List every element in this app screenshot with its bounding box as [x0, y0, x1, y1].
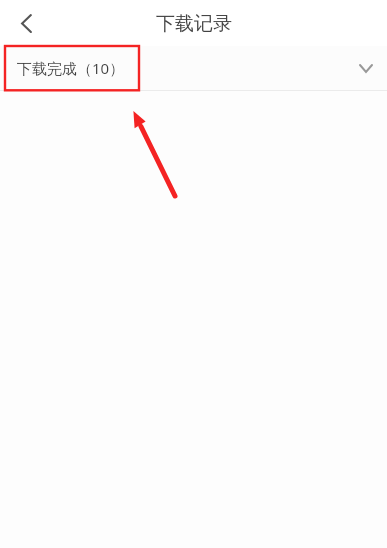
staticText: 下载记录: [156, 12, 232, 36]
staticText: 下载完成（10）: [17, 58, 125, 78]
button[interactable]: 下载完成（10）: [0, 46, 387, 90]
button[interactable]: Back: [0, 0, 50, 46]
button[interactable]: Collapse section: [345, 46, 387, 90]
